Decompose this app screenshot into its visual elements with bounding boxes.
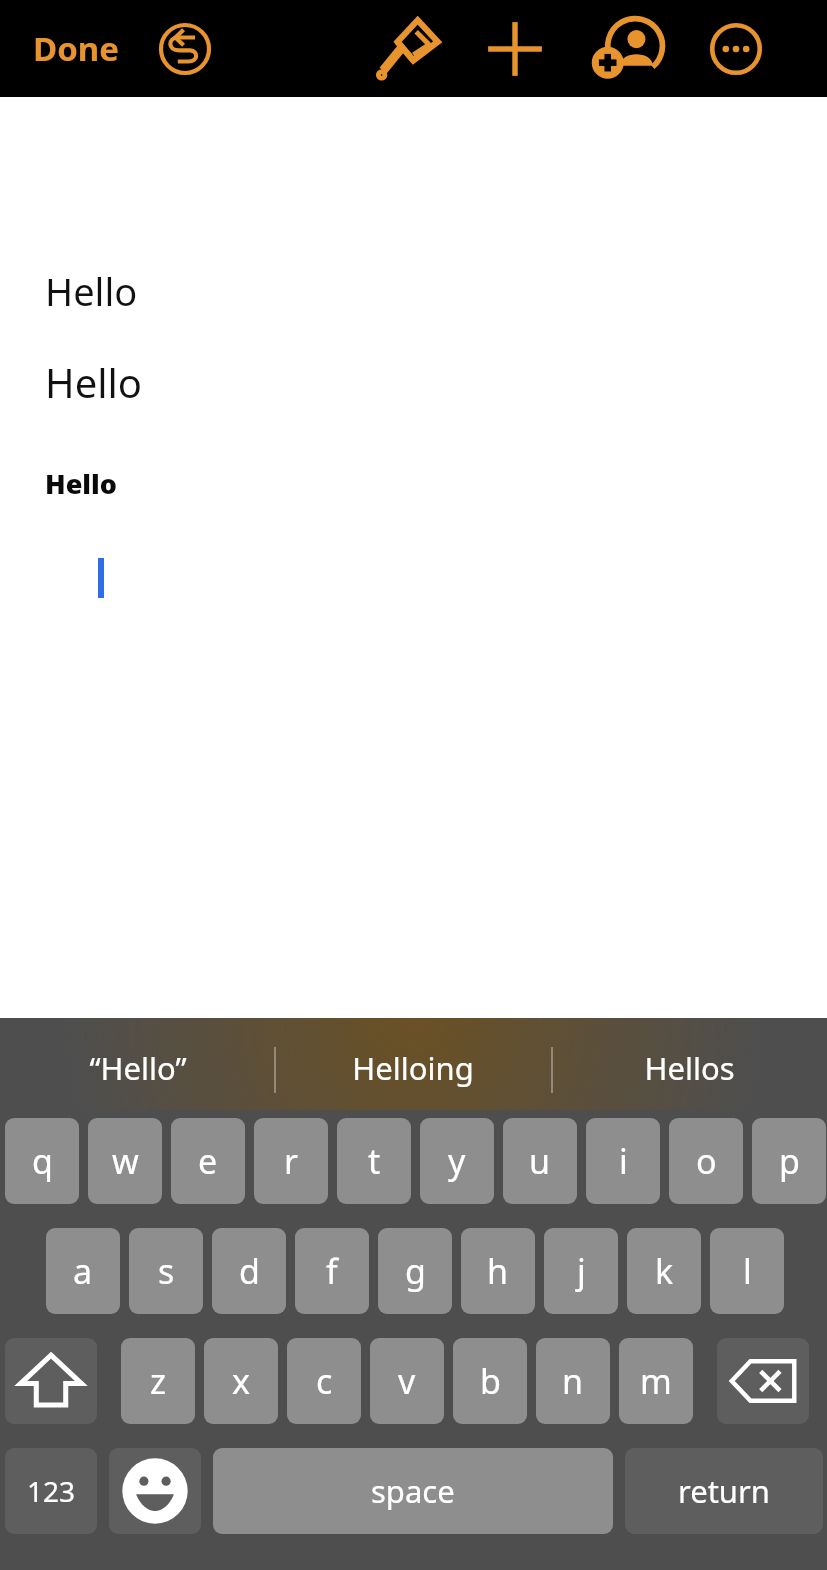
- staticText: Hello: [45, 265, 138, 317]
- button[interactable]: Undo: [155, 19, 215, 79]
- button[interactable]: h: [461, 1228, 535, 1314]
- button[interactable]: w: [88, 1118, 162, 1204]
- button[interactable]: o: [669, 1118, 743, 1204]
- button[interactable]: v: [370, 1338, 444, 1424]
- button[interactable]: i: [586, 1118, 660, 1204]
- button[interactable]: n: [536, 1338, 610, 1424]
- button[interactable]: Hellos: [551, 1018, 827, 1118]
- button[interactable]: x: [204, 1338, 278, 1424]
- staticText: s: [158, 1248, 175, 1294]
- staticText: v: [398, 1358, 416, 1404]
- button[interactable]: Emoji keyboard: [109, 1448, 201, 1534]
- staticText: space: [371, 1470, 455, 1512]
- button[interactable]: Helloing: [275, 1018, 551, 1118]
- button[interactable]: Add person: [591, 11, 667, 87]
- staticText: i: [619, 1138, 628, 1184]
- staticText: “Hello”: [89, 1047, 187, 1089]
- button[interactable]: a: [46, 1228, 120, 1314]
- button[interactable]: f: [295, 1228, 369, 1314]
- staticText: n: [562, 1358, 584, 1404]
- button[interactable]: s: [129, 1228, 203, 1314]
- button[interactable]: Backspace: [717, 1338, 809, 1424]
- button[interactable]: Markup: [373, 13, 445, 85]
- staticText: k: [655, 1248, 674, 1294]
- staticText: m: [640, 1358, 672, 1404]
- staticText: return: [678, 1470, 770, 1512]
- staticText: x: [232, 1358, 250, 1404]
- staticText: Done: [33, 26, 119, 71]
- button[interactable]: Done: [33, 26, 119, 71]
- staticText: q: [32, 1138, 53, 1184]
- staticText: u: [529, 1138, 551, 1184]
- staticText: Hellos: [644, 1047, 735, 1089]
- button[interactable]: c: [287, 1338, 361, 1424]
- staticText: d: [239, 1248, 260, 1294]
- button[interactable]: g: [378, 1228, 452, 1314]
- button[interactable]: b: [453, 1338, 527, 1424]
- button[interactable]: Shift: [5, 1338, 97, 1424]
- staticText: b: [480, 1358, 501, 1404]
- button[interactable]: More options: [703, 16, 769, 82]
- staticText: Hello: [45, 465, 118, 502]
- button[interactable]: return: [625, 1448, 823, 1534]
- button[interactable]: r: [254, 1118, 328, 1204]
- staticText: j: [577, 1248, 586, 1294]
- staticText: Helloing: [352, 1047, 474, 1089]
- button[interactable]: u: [503, 1118, 577, 1204]
- staticText: h: [487, 1248, 509, 1294]
- button[interactable]: Add: [483, 17, 547, 81]
- staticText: e: [198, 1138, 218, 1184]
- staticText: z: [150, 1358, 166, 1404]
- staticText: f: [326, 1248, 338, 1294]
- staticText: c: [316, 1358, 333, 1404]
- button[interactable]: j: [544, 1228, 618, 1314]
- staticText: y: [448, 1138, 466, 1184]
- staticText: 123: [27, 1472, 76, 1510]
- staticText: l: [743, 1248, 752, 1294]
- button[interactable]: t: [337, 1118, 411, 1204]
- staticText: a: [73, 1248, 93, 1294]
- button[interactable]: m: [619, 1338, 693, 1424]
- button[interactable]: l: [710, 1228, 784, 1314]
- staticText: r: [284, 1138, 299, 1184]
- staticText: o: [696, 1138, 717, 1184]
- button[interactable]: e: [171, 1118, 245, 1204]
- button[interactable]: “Hello”: [0, 1018, 275, 1118]
- staticText: Hello: [45, 355, 143, 409]
- button[interactable]: 123: [5, 1448, 97, 1534]
- staticText: t: [368, 1138, 381, 1184]
- button[interactable]: space: [213, 1448, 613, 1534]
- staticText: g: [405, 1248, 426, 1294]
- button[interactable]: k: [627, 1228, 701, 1314]
- staticText: w: [112, 1138, 139, 1184]
- button[interactable]: d: [212, 1228, 286, 1314]
- button[interactable]: y: [420, 1118, 494, 1204]
- button[interactable]: z: [121, 1338, 195, 1424]
- button[interactable]: q: [5, 1118, 79, 1204]
- button[interactable]: p: [752, 1118, 826, 1204]
- staticText: p: [779, 1138, 800, 1184]
